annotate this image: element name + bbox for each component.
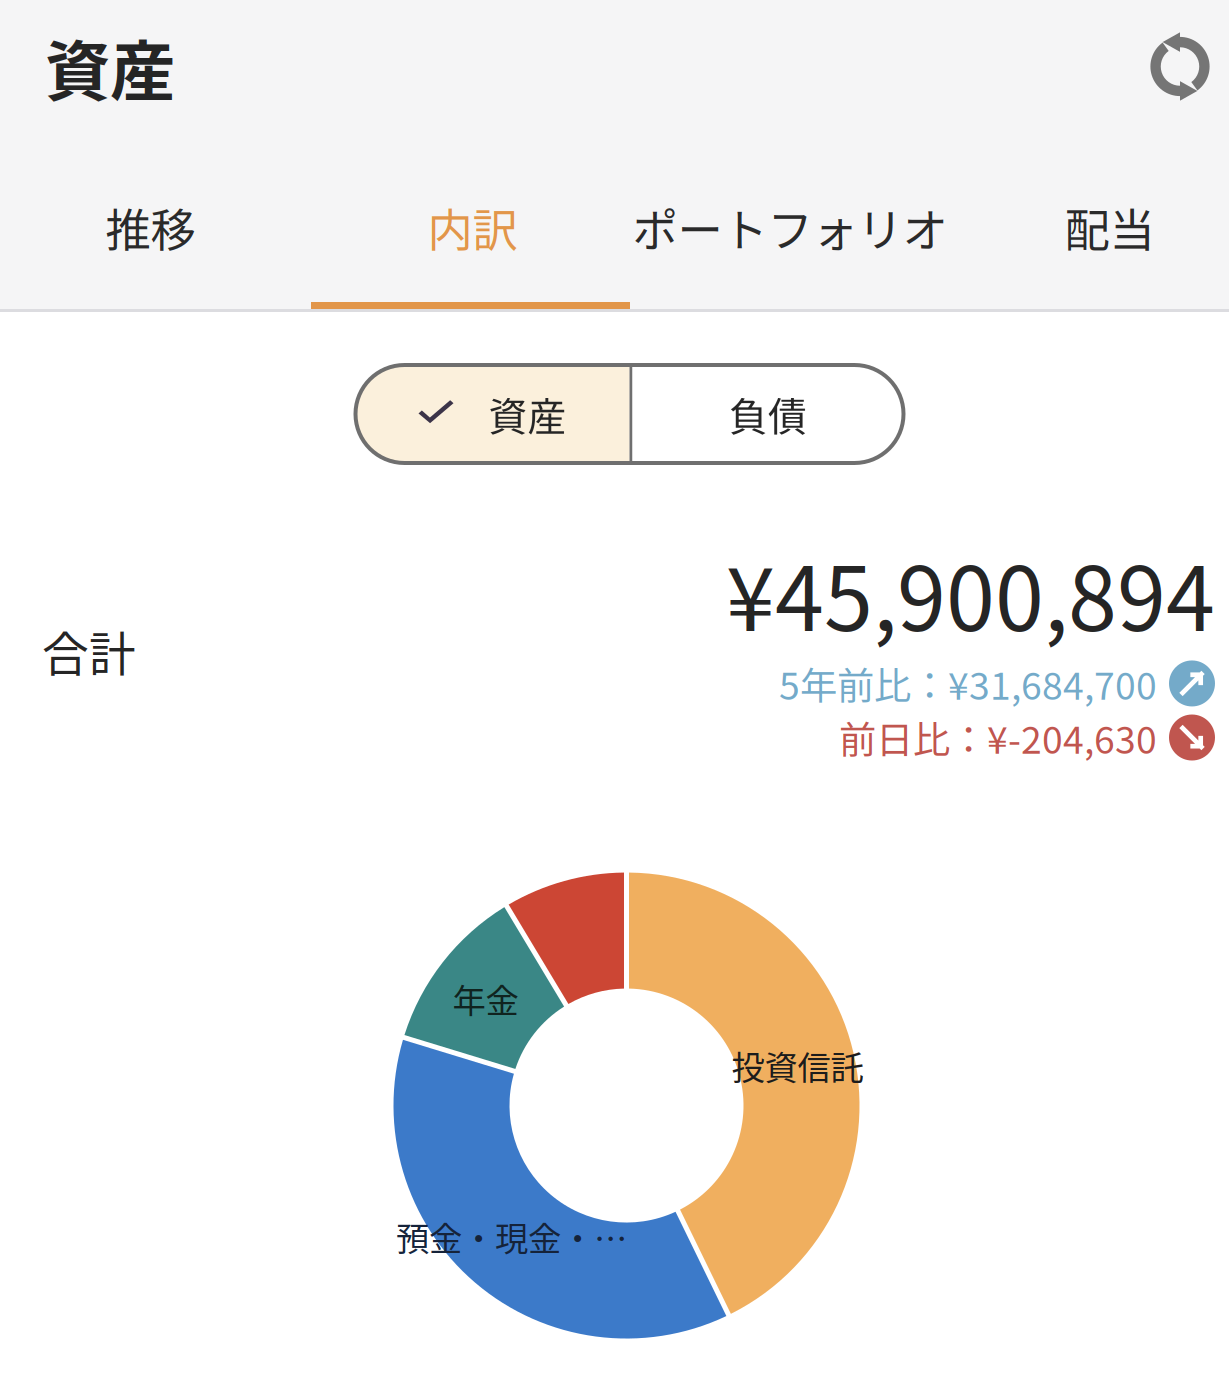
button[interactable]: 更新 bbox=[1143, 29, 1229, 103]
staticText: 年金 bbox=[452, 974, 518, 1023]
staticText: 合計 bbox=[42, 617, 136, 685]
button[interactable]: 負債 bbox=[632, 365, 903, 463]
staticText: 資産 bbox=[488, 386, 566, 442]
button[interactable]: 推移 bbox=[0, 133, 311, 309]
staticText: 前日比：¥-204,630 bbox=[839, 710, 1157, 765]
button[interactable]: ポートフォリオ bbox=[630, 133, 990, 309]
staticText: 負債 bbox=[729, 386, 807, 442]
staticText: 配当 bbox=[1064, 195, 1154, 260]
staticText: ¥45,900,894 bbox=[726, 529, 1215, 656]
staticText: 推移 bbox=[105, 195, 195, 260]
staticText: 5年前比：¥31,684,700 bbox=[779, 656, 1157, 710]
staticText: ポートフォリオ bbox=[632, 195, 947, 260]
button[interactable]: 資産 bbox=[355, 365, 629, 463]
staticText: 預金・現金・… bbox=[396, 1212, 627, 1261]
button[interactable]: 内訳 bbox=[311, 133, 630, 309]
staticText: 資産 bbox=[45, 19, 175, 114]
staticText: 投資信託 bbox=[731, 1041, 863, 1090]
staticText: 内訳 bbox=[427, 195, 517, 260]
button[interactable]: 配当 bbox=[990, 133, 1229, 309]
